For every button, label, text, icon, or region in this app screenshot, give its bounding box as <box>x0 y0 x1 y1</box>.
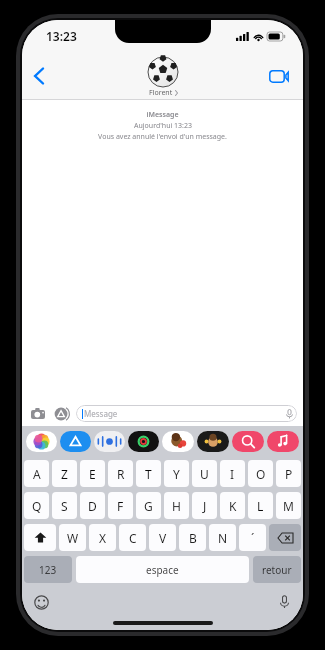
staticText: H <box>172 498 181 514</box>
staticText: C <box>129 530 137 546</box>
button[interactable]: B <box>179 524 206 551</box>
button[interactable]: Emoji keyboard <box>30 591 52 613</box>
staticText: M <box>283 498 294 514</box>
button[interactable]: L <box>248 492 273 519</box>
button[interactable]: ´ <box>239 524 266 551</box>
button[interactable]: X <box>89 524 116 551</box>
button[interactable]: iMessage app <box>267 431 299 452</box>
staticText: F <box>117 498 124 514</box>
staticText: X <box>99 530 107 546</box>
button[interactable]: iMessage app <box>60 431 91 452</box>
button[interactable]: O <box>248 460 273 487</box>
button[interactable]: I <box>220 460 245 487</box>
button[interactable]: Shift <box>24 524 56 551</box>
staticText: T <box>145 466 152 482</box>
button[interactable]: A <box>24 460 49 487</box>
button[interactable]: Message <box>76 405 297 422</box>
button[interactable]: iMessage app <box>26 431 57 452</box>
staticText: G <box>144 498 153 514</box>
button[interactable]: E <box>80 460 105 487</box>
button[interactable]: iMessage app <box>197 431 229 452</box>
button[interactable]: U <box>192 460 217 487</box>
button[interactable]: Q <box>24 492 49 519</box>
button[interactable]: R <box>108 460 133 487</box>
staticText: Florent <box>149 88 173 98</box>
button[interactable]: W <box>59 524 86 551</box>
staticText: Aujourd'hui 13:23 <box>134 121 192 131</box>
button[interactable]: App Store apps <box>52 404 71 423</box>
staticText: Y <box>173 466 180 482</box>
staticText: espace <box>146 563 179 577</box>
button[interactable]: FaceTime video call <box>263 60 295 92</box>
button[interactable]: V <box>149 524 176 551</box>
staticText: 13:23 <box>46 28 77 44</box>
button[interactable]: M <box>276 492 301 519</box>
button[interactable]: T <box>136 460 161 487</box>
staticText: A <box>33 466 41 482</box>
staticText: ´ <box>251 530 255 546</box>
button[interactable]: Back <box>22 59 56 93</box>
staticText: R <box>117 466 125 482</box>
button[interactable]: G <box>136 492 161 519</box>
button[interactable]: S <box>52 492 77 519</box>
button[interactable]: iMessage app <box>94 431 125 452</box>
button[interactable]: espace <box>76 556 249 583</box>
button[interactable]: J <box>192 492 217 519</box>
staticText: iMessage <box>146 110 179 120</box>
staticText: L <box>257 498 264 514</box>
button[interactable]: N <box>209 524 236 551</box>
button[interactable]: H <box>164 492 189 519</box>
button[interactable]: Florent <box>148 54 178 98</box>
button[interactable]: F <box>108 492 133 519</box>
button[interactable]: Backspace <box>269 524 301 551</box>
button[interactable]: Camera <box>28 404 47 423</box>
staticText: Q <box>32 498 42 514</box>
staticText: P <box>285 466 293 482</box>
staticText: Z <box>61 466 68 482</box>
staticText: Message <box>84 408 118 419</box>
staticText: W <box>67 530 79 546</box>
button[interactable]: 123 <box>24 556 72 583</box>
button[interactable]: P <box>276 460 301 487</box>
button[interactable]: C <box>119 524 146 551</box>
staticText: D <box>88 498 97 514</box>
staticText: I <box>230 466 235 482</box>
staticText: E <box>89 466 96 482</box>
button[interactable]: retour <box>253 556 301 583</box>
button[interactable]: Z <box>52 460 77 487</box>
staticText: K <box>229 498 237 514</box>
staticText: S <box>61 498 68 514</box>
staticText: 123 <box>39 563 57 577</box>
staticText: V <box>159 530 167 546</box>
staticText: N <box>218 530 228 546</box>
button[interactable]: D <box>80 492 105 519</box>
button[interactable]: Dictation <box>273 591 295 613</box>
button[interactable]: Y <box>164 460 189 487</box>
button[interactable]: iMessage app <box>128 431 159 452</box>
button[interactable]: K <box>220 492 245 519</box>
button[interactable]: iMessage app <box>162 431 194 452</box>
staticText: O <box>256 466 266 482</box>
staticText: J <box>203 498 207 514</box>
staticText: B <box>189 530 197 546</box>
staticText: U <box>200 466 209 482</box>
staticText: retour <box>262 563 292 577</box>
staticText: Vous avez annulé l'envoi d'un message. <box>98 132 227 142</box>
button[interactable]: iMessage app <box>232 431 264 452</box>
